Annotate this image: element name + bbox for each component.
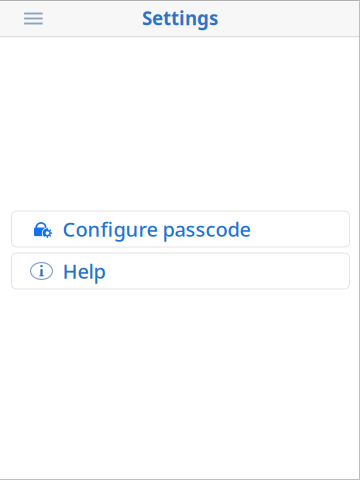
button[interactable]: Help: [11, 253, 349, 289]
button[interactable]: Menu: [12, 0, 54, 36]
button[interactable]: Configure passcode: [11, 211, 349, 247]
staticText: Help: [62, 258, 105, 284]
staticText: Configure passcode: [62, 216, 250, 242]
staticText: Settings: [142, 6, 218, 30]
